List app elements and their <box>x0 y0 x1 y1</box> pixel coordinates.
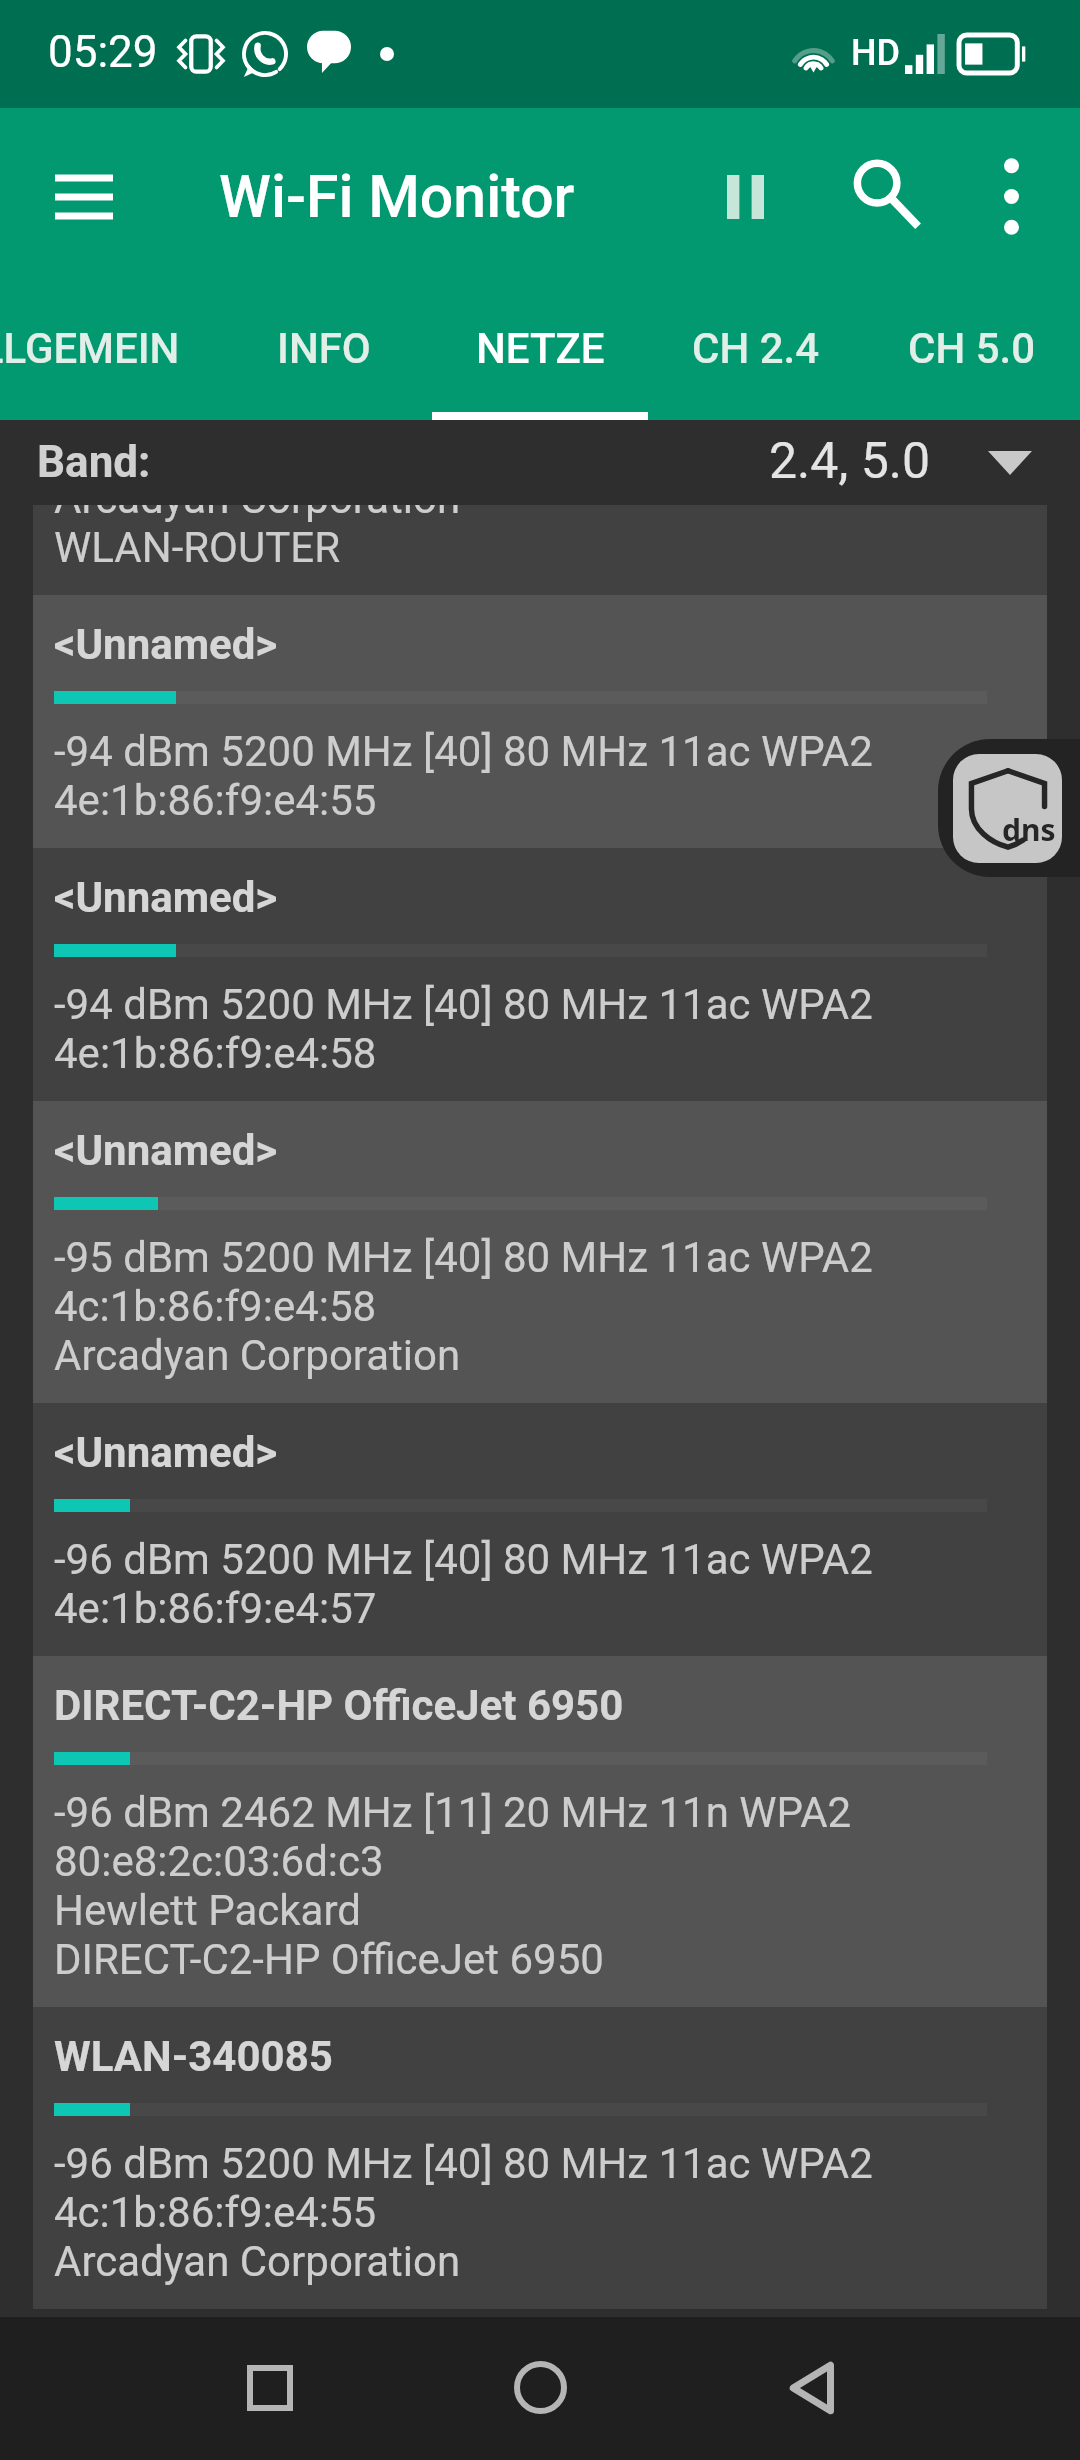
staticText: DIRECT-C2-HP OfficeJet 6950 <box>54 1935 604 1984</box>
button[interactable]: Recent apps <box>180 2317 360 2460</box>
staticText: -96 dBm 2462 MHz [11] 20 MHz 11n WPA2 <box>54 1788 852 1837</box>
staticText: Wi-Fi Monitor <box>219 162 575 231</box>
button[interactable]: DNS shield <box>938 739 1080 877</box>
staticText: -94 dBm 5200 MHz [40] 80 MHz 11ac WPA2 <box>54 727 873 776</box>
staticText: Arcadyan Corporation <box>54 1331 461 1380</box>
staticText: 4c:1b:86:f9:e4:58 <box>54 1282 377 1331</box>
button[interactable]: Home <box>450 2317 630 2460</box>
staticText: Arcadyan Corporation <box>54 2237 461 2286</box>
button[interactable]: Band: <box>0 420 1080 505</box>
staticText: 4c:1b:86:f9:e4:55 <box>54 2188 377 2237</box>
staticText: CH 5.0 <box>908 324 1036 373</box>
button[interactable]: DIRECT-C2-HP OfficeJet 6950 <box>33 1656 1047 2007</box>
staticText: ALLGEMEIN <box>0 324 180 373</box>
button[interactable]: CH 2.4 <box>648 285 864 420</box>
button[interactable]: CH 5.0 <box>864 285 1080 420</box>
button[interactable]: Search <box>819 108 953 285</box>
button[interactable]: More options <box>953 108 1070 285</box>
staticText: <Unnamed> <box>54 1428 278 1477</box>
staticText: WLAN-340085 <box>54 2032 333 2081</box>
button[interactable]: Open navigation menu <box>0 108 168 285</box>
staticText: HD <box>851 32 901 74</box>
button[interactable]: Arcadyan Corporation <box>33 505 1047 595</box>
staticText: -95 dBm 5200 MHz [40] 80 MHz 11ac WPA2 <box>54 1233 873 1282</box>
staticText: CH 2.4 <box>692 324 820 373</box>
staticText: -96 dBm 5200 MHz [40] 80 MHz 11ac WPA2 <box>54 2139 873 2188</box>
button[interactable]: <Unnamed> <box>33 1101 1047 1403</box>
staticText: -96 dBm 5200 MHz [40] 80 MHz 11ac WPA2 <box>54 1535 873 1584</box>
staticText: Band: <box>37 436 151 488</box>
button[interactable]: INFO <box>215 285 432 420</box>
staticText: 05:29 <box>48 26 158 78</box>
button[interactable]: NETZE <box>432 285 648 420</box>
staticText: Arcadyan Corporation <box>54 505 461 523</box>
staticText: 4e:1b:86:f9:e4:58 <box>54 1029 377 1078</box>
staticText: <Unnamed> <box>54 873 278 922</box>
staticText: NETZE <box>476 324 605 373</box>
button[interactable]: <Unnamed> <box>33 848 1047 1101</box>
button[interactable]: <Unnamed> <box>33 1403 1047 1656</box>
staticText: INFO <box>277 324 371 373</box>
button[interactable]: WLAN-340085 <box>33 2007 1047 2309</box>
staticText: 2.4, 5.0 <box>769 432 931 491</box>
staticText: 80:e8:2c:03:6d:c3 <box>54 1837 384 1886</box>
staticText: -94 dBm 5200 MHz [40] 80 MHz 11ac WPA2 <box>54 980 873 1029</box>
staticText: Hewlett Packard <box>54 1886 361 1935</box>
staticText: <Unnamed> <box>54 1126 278 1175</box>
button[interactable]: Pause <box>671 108 819 285</box>
staticText: dns <box>1002 809 1056 850</box>
staticText: DIRECT-C2-HP OfficeJet 6950 <box>54 1681 624 1730</box>
staticText: 4e:1b:86:f9:e4:55 <box>54 776 377 825</box>
staticText: 4e:1b:86:f9:e4:57 <box>54 1584 377 1633</box>
button[interactable]: Back <box>721 2317 901 2460</box>
staticText: <Unnamed> <box>54 620 278 669</box>
button[interactable]: <Unnamed> <box>33 595 1047 848</box>
button[interactable]: ALLGEMEIN <box>0 285 215 420</box>
staticText: WLAN-ROUTER <box>54 523 341 564</box>
